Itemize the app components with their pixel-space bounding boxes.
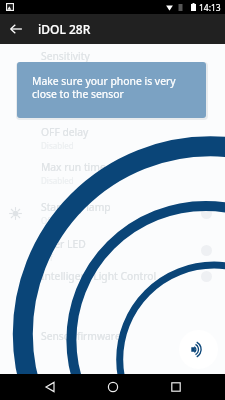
button[interactable]: Navigate up [0,14,32,44]
button[interactable]: NFC sensor [179,330,218,369]
staticText: 14:13 [199,2,221,14]
button[interactable]: Stand-by lamp [0,197,225,229]
button[interactable]: Make sure your phone is very close to th… [17,62,206,118]
staticText: Disabled [41,140,74,151]
staticText: Stand-by lamp [41,200,111,214]
staticText: Intelligent Light Control [41,269,157,283]
button[interactable]: Intelligent Light Control [0,263,225,289]
button[interactable]: Back [34,374,66,400]
button[interactable]: Recent apps [160,374,192,400]
staticText: Off [41,252,53,263]
staticText: Sensitivity [41,49,90,63]
staticText: ON duration [41,83,102,97]
button[interactable]: OFF delay [0,122,225,154]
staticText: Max run time [41,160,106,174]
button[interactable]: Sensitivity [0,46,225,78]
button[interactable]: Home [97,374,129,400]
button[interactable]: Over LED [0,234,225,266]
staticText: OFF delay [41,125,89,139]
button[interactable]: Sensor firmware [0,323,225,349]
staticText: Off [41,215,53,226]
staticText: Make sure your phone is very close to th… [32,74,176,101]
staticText: Disabled [41,175,74,186]
staticText: Over LED [41,237,86,251]
button[interactable]: Max run time [0,157,225,189]
button[interactable]: ON duration [0,80,225,112]
staticText: Sensor firmware [41,329,121,343]
staticText: iDOL 28R [38,21,91,37]
